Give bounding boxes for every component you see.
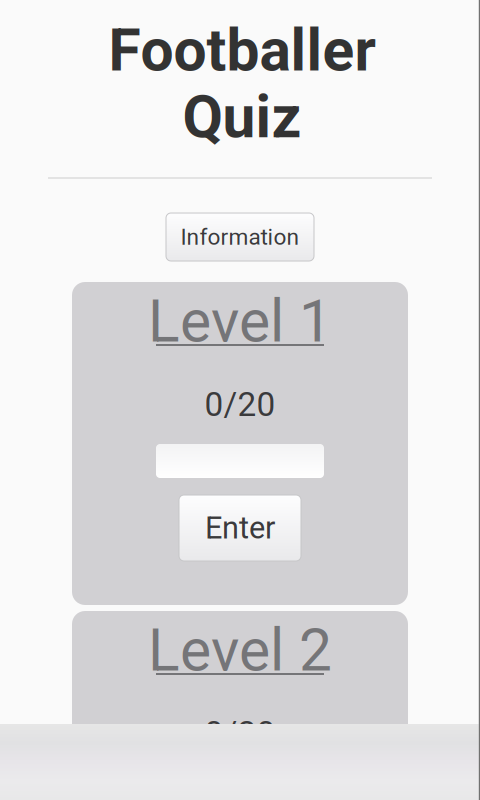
staticText: 0/20 <box>204 385 275 424</box>
staticText: 0/20 <box>204 714 275 753</box>
button[interactable]: Information <box>166 213 314 261</box>
button[interactable]: Level 1 <box>148 287 332 355</box>
button[interactable]: Enter <box>179 495 301 561</box>
staticText: Level 2 <box>148 616 332 685</box>
staticText: Level 1 <box>148 287 332 356</box>
staticText: Enter <box>205 510 275 546</box>
staticText: Information <box>180 224 299 250</box>
button[interactable]: Level 2 <box>148 616 332 684</box>
button[interactable]: Answer field <box>156 444 324 478</box>
staticText: Quiz <box>182 83 301 152</box>
staticText: Footballer <box>108 16 375 85</box>
